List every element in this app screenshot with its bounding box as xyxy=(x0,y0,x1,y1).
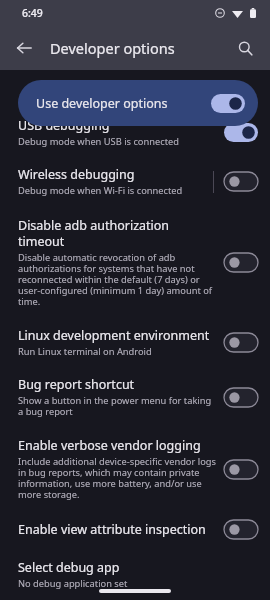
button[interactable]: USB debugging xyxy=(224,123,258,142)
button[interactable]: Search xyxy=(229,32,261,64)
staticText: Disable adb authorization timeout xyxy=(18,217,218,250)
button[interactable]: Wireless debugging xyxy=(224,172,258,191)
staticText: Debug mode when Wi-Fi is connected xyxy=(18,184,183,197)
staticText: Enable view attribute inspection xyxy=(18,521,206,538)
staticText: No debug application set xyxy=(18,577,128,590)
button[interactable]: Enable view attribute inspection xyxy=(224,520,258,539)
staticText: Wireless debugging xyxy=(18,166,135,183)
button[interactable]: Enable view attribute inspection xyxy=(0,512,270,550)
staticText: USB debugging xyxy=(18,117,110,134)
button[interactable]: Enable verbose vendor logging xyxy=(224,460,258,479)
button[interactable]: USB debugging xyxy=(0,117,270,158)
button[interactable]: Disable adb authorization timeout xyxy=(0,208,270,319)
staticText: Use developer options xyxy=(36,95,211,112)
staticText: Run Linux terminal on Android xyxy=(18,345,152,358)
staticText: Linux development environment xyxy=(18,327,210,344)
button[interactable]: Enable verbose vendor logging xyxy=(0,429,270,512)
button[interactable]: Linux development environment xyxy=(0,319,270,369)
button[interactable]: Wireless debugging xyxy=(0,158,270,208)
staticText: Enable verbose vendor logging xyxy=(18,437,201,454)
button[interactable]: Linux development environment xyxy=(224,333,258,352)
staticText: 6:49 xyxy=(22,6,43,20)
staticText: Disable automatic revocation of adb auth… xyxy=(18,251,218,308)
button[interactable]: Select debug app xyxy=(0,550,270,599)
staticText: Bug report shortcut xyxy=(18,376,135,393)
staticText: Select debug app xyxy=(18,559,120,576)
button[interactable]: Disable adb authorization timeout xyxy=(224,253,258,272)
staticText: Show a button in the power menu for taki… xyxy=(18,394,218,418)
button[interactable]: Bug report shortcut xyxy=(0,369,270,429)
staticText: Include additional device-specific vendo… xyxy=(18,455,218,501)
button[interactable]: Use developer options xyxy=(18,80,258,126)
button[interactable]: Back xyxy=(8,32,40,64)
button[interactable]: Bug report shortcut xyxy=(224,388,258,407)
staticText: Debug mode when USB is connected xyxy=(18,135,180,148)
staticText: Developer options xyxy=(50,38,175,58)
